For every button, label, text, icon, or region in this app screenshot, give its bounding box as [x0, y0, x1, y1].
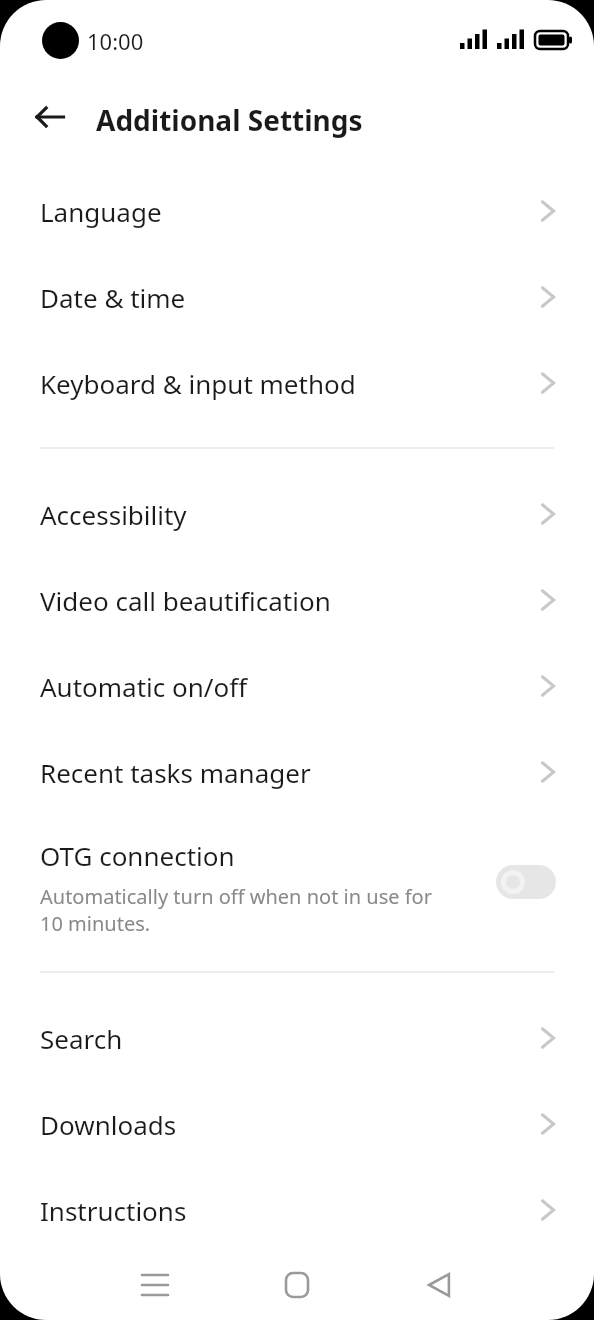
staticText: Downloads	[40, 1107, 177, 1142]
staticText: Instructions	[40, 1193, 187, 1228]
staticText: OTG connection	[40, 838, 235, 873]
staticText: Keyboard & input method	[40, 366, 356, 401]
button[interactable]: Instructions	[0, 1167, 594, 1253]
staticText: Date & time	[40, 280, 186, 315]
staticText: Language	[40, 194, 162, 229]
button[interactable]: Back	[409, 1255, 469, 1315]
staticText: Search	[40, 1021, 123, 1056]
button[interactable]: Recent apps	[125, 1255, 185, 1315]
button[interactable]: Language	[0, 168, 594, 254]
button[interactable]: Keyboard & input method	[0, 340, 594, 426]
staticText: Video call beautification	[40, 583, 331, 618]
staticText: 10:00	[87, 26, 144, 56]
staticText: Additional Settings	[96, 101, 363, 139]
staticText: Accessibility	[40, 497, 187, 532]
button[interactable]: Video call beautification	[0, 557, 594, 643]
button[interactable]: Downloads	[0, 1081, 594, 1167]
staticText: Automatic on/off	[40, 669, 248, 704]
button[interactable]: OTG connection toggle	[496, 865, 556, 899]
button[interactable]: Date & time	[0, 254, 594, 340]
button[interactable]: Search	[0, 995, 594, 1081]
button[interactable]: OTG connection	[0, 820, 594, 950]
button[interactable]: Home	[267, 1255, 327, 1315]
button[interactable]: Accessibility	[0, 471, 594, 557]
button[interactable]: Recent tasks manager	[0, 729, 594, 815]
button[interactable]: Back	[26, 93, 74, 141]
button[interactable]: Automatic on/off	[0, 643, 594, 729]
staticText: Recent tasks manager	[40, 755, 311, 790]
staticText: Automatically turn off when not in use f…	[40, 883, 452, 937]
